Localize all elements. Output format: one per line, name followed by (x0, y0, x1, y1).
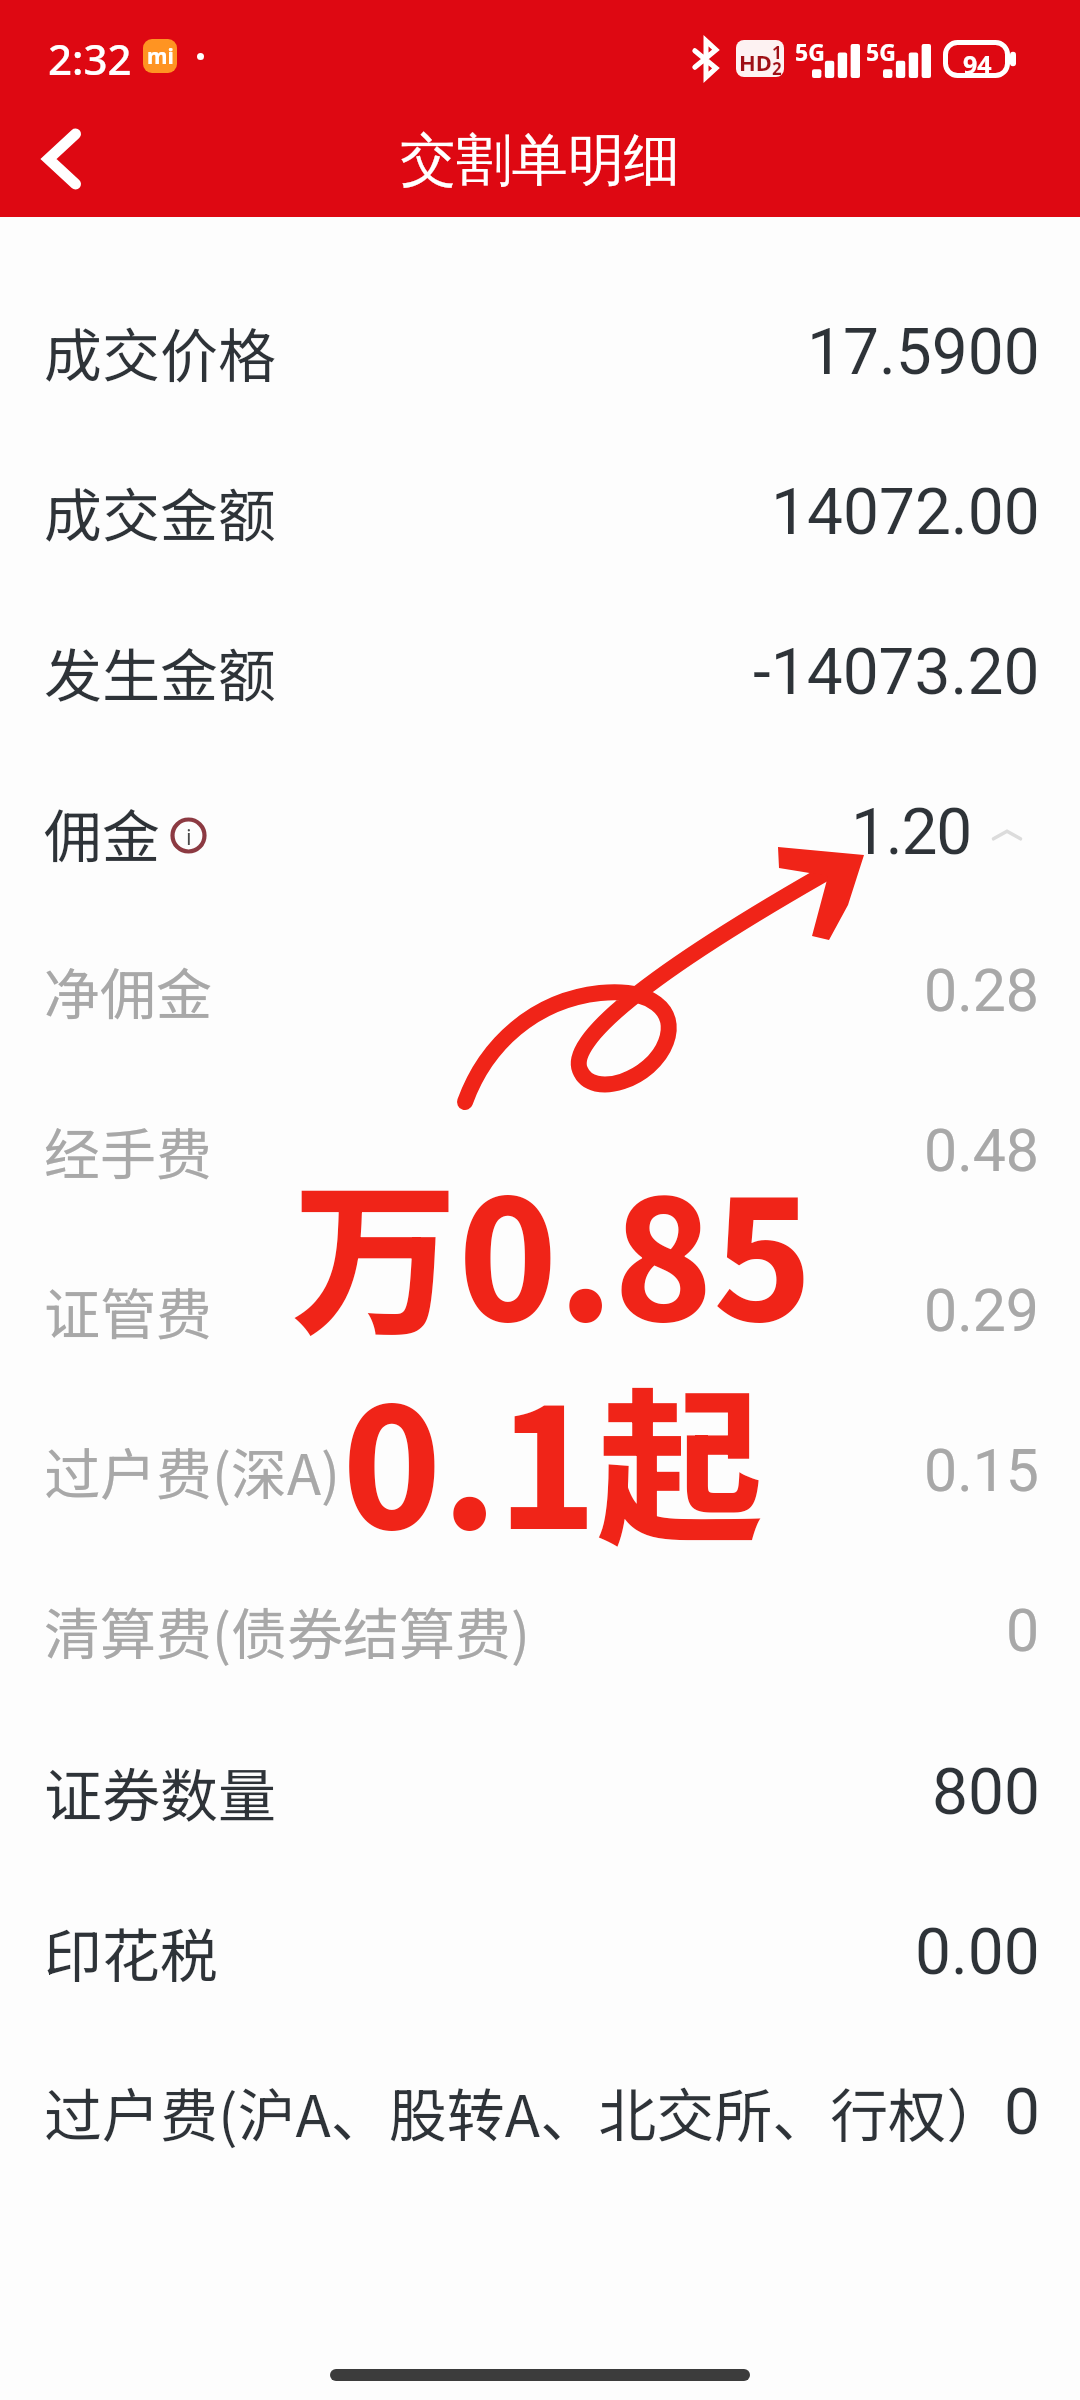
button[interactable]: 过户费(沪A、股转A、北交所、行权） (0, 2032, 1080, 2192)
staticText: -14073.20 (753, 635, 1040, 710)
staticText: 1 (772, 41, 782, 64)
button[interactable]: 成交金额 (0, 432, 1080, 592)
staticText: 0.00 (915, 1915, 1040, 1990)
button[interactable]: 清算费(债券结算费) (0, 1552, 1080, 1712)
staticText: 交割单明细 (400, 125, 680, 196)
staticText: 清算费(债券结算费) (44, 1590, 530, 1671)
staticText: 成交价格 (44, 310, 277, 394)
staticText: 1.20 (851, 795, 971, 870)
staticText: 2 (772, 57, 782, 77)
button[interactable]: 经手费 (0, 1072, 1080, 1232)
staticText: 证券数量 (44, 1750, 277, 1834)
staticText: 过户费(深A) (44, 1430, 340, 1511)
button[interactable]: Back (11, 109, 111, 209)
staticText: 发生金额 (44, 630, 277, 714)
staticText: 5G (795, 36, 825, 67)
staticText: 过户费(沪A、股转A、北交所、行权） (44, 2070, 1005, 2154)
button[interactable]: 证管费 (0, 1232, 1080, 1392)
button[interactable]: 收起明细 (987, 813, 1027, 853)
button[interactable]: 佣金 (0, 752, 1080, 912)
button[interactable]: 净佣金 (0, 912, 1080, 1072)
staticText: 0 (1004, 2075, 1040, 2150)
staticText: 0.1起 (342, 1336, 763, 1576)
staticText: 0.28 (924, 956, 1040, 1025)
staticText: 0 (1006, 1596, 1040, 1665)
button[interactable]: 成交价格 (0, 272, 1080, 432)
button[interactable]: 证券数量 (0, 1712, 1080, 1872)
staticText: 净佣金 (44, 950, 212, 1031)
staticText: 经手费 (44, 1110, 212, 1191)
staticText: 成交金额 (44, 470, 277, 554)
staticText: 2:32 (48, 30, 132, 87)
staticText: 万0.85 (292, 1128, 813, 1368)
staticText: mi (147, 42, 174, 71)
staticText: 5G (866, 36, 896, 67)
staticText: 0.48 (924, 1116, 1040, 1185)
button[interactable]: 佣金说明 (170, 817, 207, 854)
staticText: 17.5900 (807, 315, 1040, 390)
staticText: 800 (932, 1755, 1040, 1830)
staticText: HD (739, 47, 772, 77)
staticText: 印花税 (44, 1910, 219, 1994)
staticText: 94 (963, 47, 992, 81)
button[interactable]: 印花税 (0, 1872, 1080, 2032)
staticText: 证管费 (44, 1270, 212, 1351)
staticText: 0.15 (924, 1436, 1040, 1505)
staticText: 佣金 (44, 791, 161, 875)
button[interactable]: 发生金额 (0, 592, 1080, 752)
staticText: 14072.00 (771, 475, 1040, 550)
button[interactable]: 过户费(深A) (0, 1392, 1080, 1552)
staticText: i (186, 821, 192, 851)
staticText: 0.29 (924, 1276, 1040, 1345)
